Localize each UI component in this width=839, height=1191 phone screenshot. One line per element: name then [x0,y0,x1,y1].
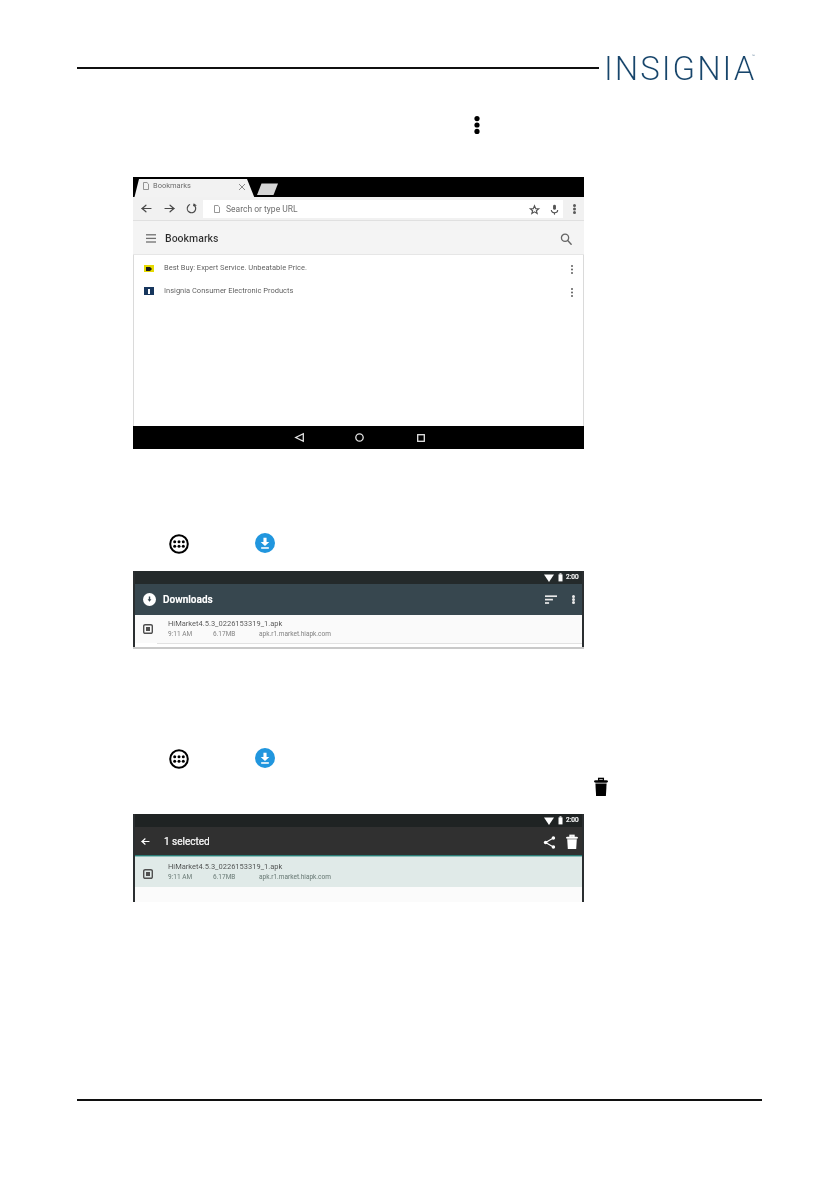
staticText: Best Buy: Expert Service. Unbeatable Pri… [164,263,307,272]
button[interactable]: Bookmark options [567,286,577,298]
staticText: INSIGNIA [604,49,757,88]
button[interactable]: More options menu [468,112,486,138]
button[interactable]: Recent apps [413,430,428,445]
button[interactable]: Back [140,202,153,215]
button[interactable]: Downloads [255,748,275,768]
button[interactable]: Close tab [237,182,247,192]
staticText: Search or type URL [226,204,298,214]
staticText: 2:00 [566,816,579,824]
staticText: Bookmarks [153,181,191,190]
staticText: apk.r1.market.hiapk.com [259,630,331,638]
staticText: Bookmarks [165,232,219,244]
staticText: apk.r1.market.hiapk.com [259,873,331,881]
button[interactable]: Best Buy: Expert Service. Unbeatable Pri… [133,257,584,280]
staticText: HiMarket4.5.3_0226153319_1.apk [168,862,283,871]
button[interactable]: Sort [543,593,559,606]
button[interactable]: Reload [185,202,198,215]
button[interactable]: Downloads [255,533,275,553]
button[interactable]: Delete [564,834,580,850]
button[interactable]: Voice search [548,203,561,216]
button[interactable]: Back [292,430,307,445]
staticText: 6.17MB [213,873,236,881]
button[interactable]: Search bookmarks [558,231,573,246]
button[interactable]: Back [138,834,153,849]
button[interactable]: More options [567,592,579,607]
button[interactable]: Navigation drawer [143,232,159,245]
button[interactable]: Share [541,834,557,850]
button[interactable]: All apps [168,748,190,770]
button[interactable]: Delete [592,777,610,797]
staticText: Downloads [163,594,213,606]
button[interactable]: HiMarket4.5.3_0226153319_1.apk [133,857,584,887]
staticText: 9:11 AM [168,630,193,638]
staticText: 1 selected [164,836,210,848]
button[interactable]: Bookmark options [567,263,577,275]
staticText: HiMarket4.5.3_0226153319_1.apk [168,619,283,628]
button[interactable]: Search or type URL [203,200,563,218]
button[interactable]: Forward [163,202,176,215]
button[interactable]: HiMarket4.5.3_0226153319_1.apk [133,615,584,643]
button[interactable]: Bookmark this page [528,203,541,216]
staticText: 9:11 AM [168,873,193,881]
staticText: ™ [752,53,756,59]
button[interactable]: Browser menu [568,202,580,216]
button[interactable]: Home [352,430,367,445]
staticText: 2:00 [566,573,579,581]
staticText: 6.17MB [213,630,236,638]
button[interactable]: Insignia Consumer Electronic Products [133,280,584,303]
button[interactable]: All apps [168,533,190,555]
staticText: Insignia Consumer Electronic Products [164,286,294,295]
